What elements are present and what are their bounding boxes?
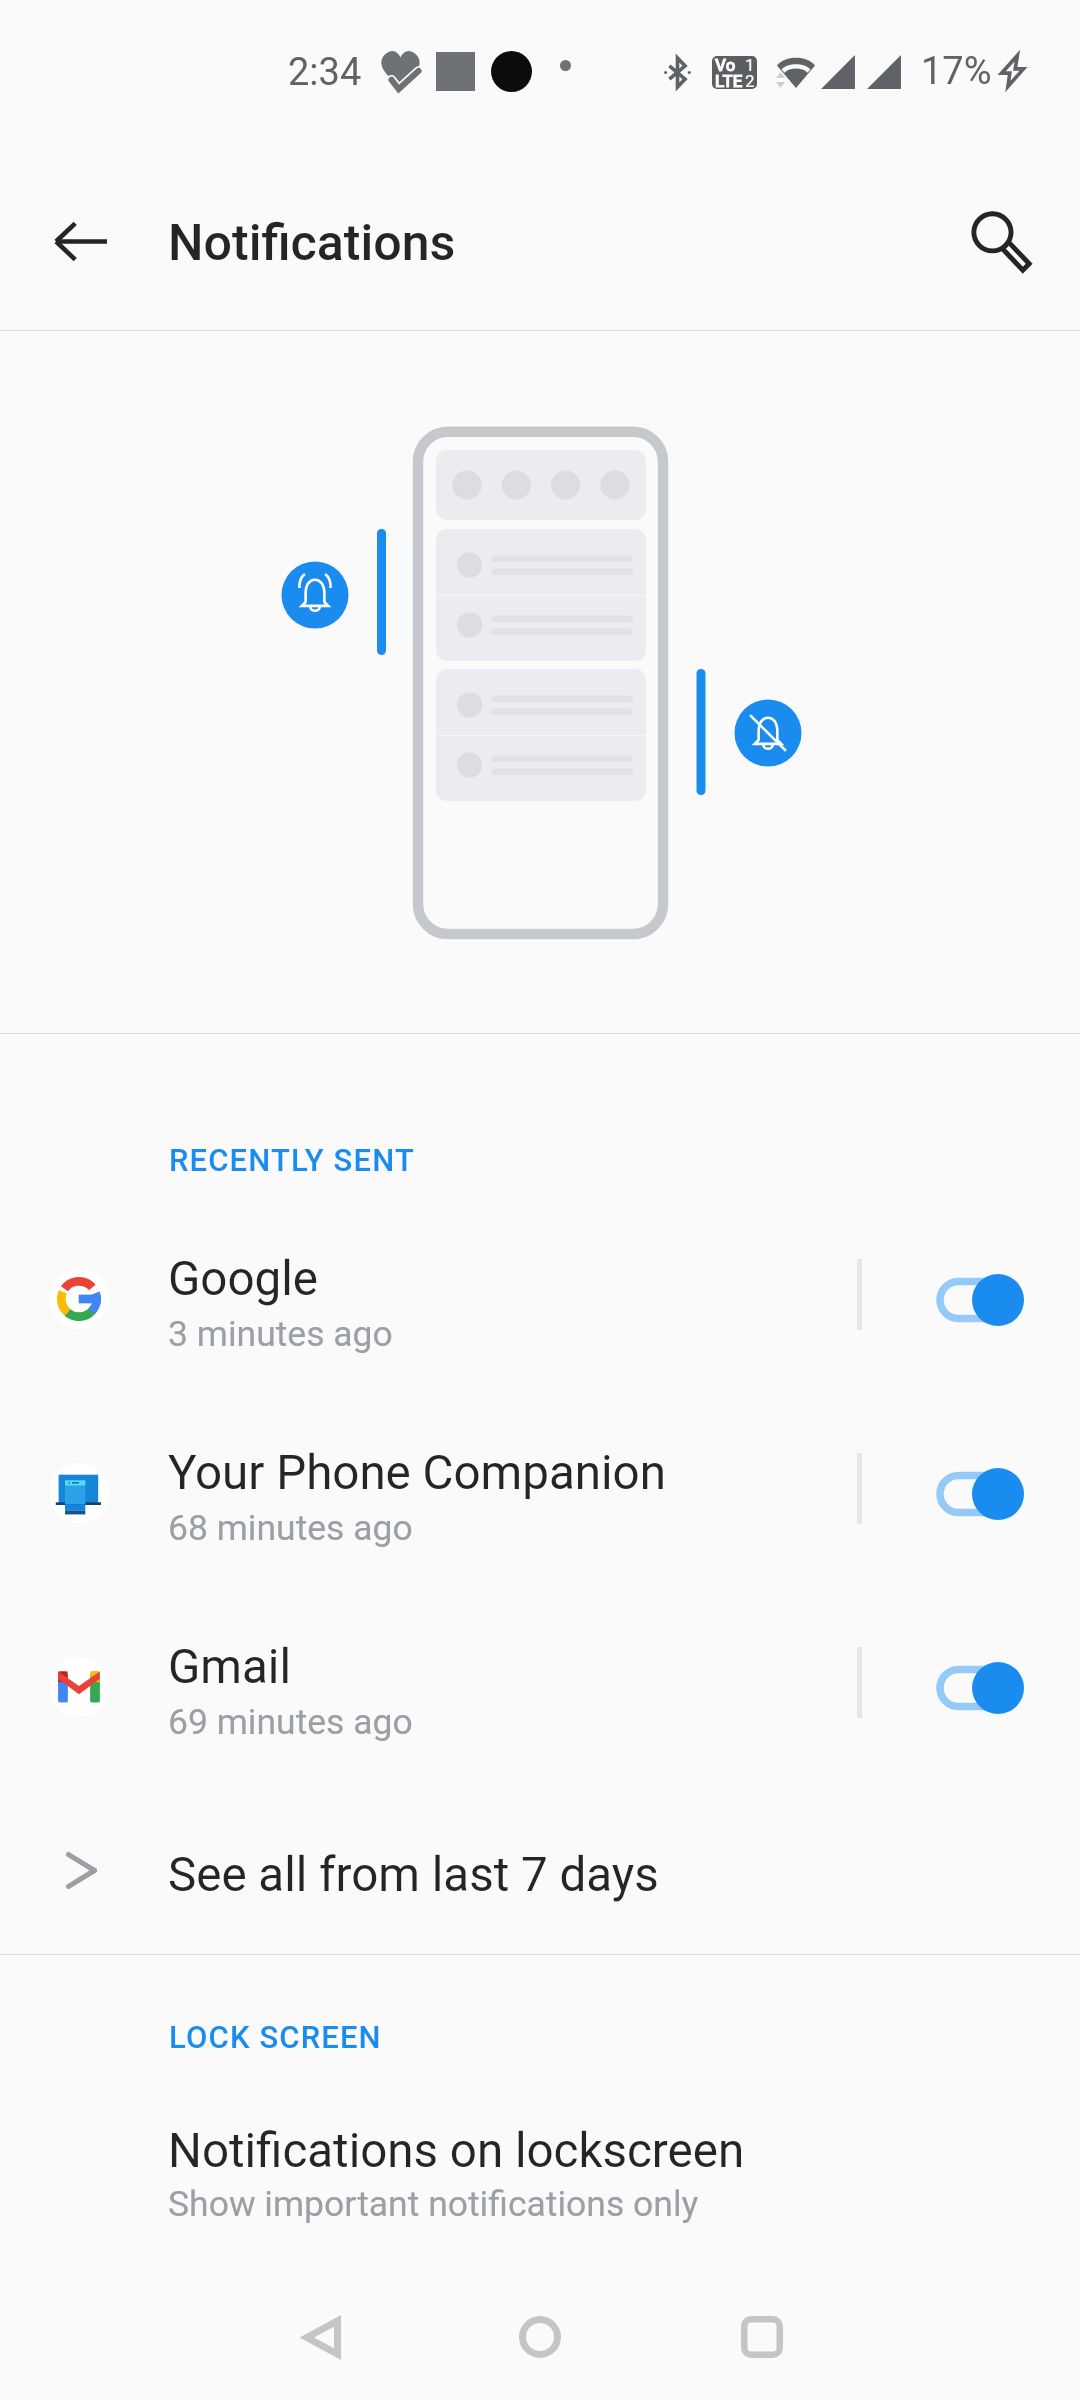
- staticText: 3 minutes ago: [168, 1313, 393, 1355]
- button[interactable]: Your Phone Companion: [0, 1396, 1080, 1590]
- staticText: Notifications on lockscreen: [168, 2123, 745, 2179]
- staticText: Vo: [715, 56, 736, 75]
- button[interactable]: Search: [946, 187, 1054, 295]
- staticText: 68 minutes ago: [168, 1507, 413, 1549]
- staticText: Show important notifications only: [168, 2183, 699, 2225]
- button[interactable]: Toggle Your Phone Companion notification…: [935, 1439, 1045, 1549]
- button[interactable]: Back: [26, 187, 134, 295]
- button[interactable]: Gmail: [0, 1590, 1080, 1784]
- button[interactable]: Toggle Google notifications: [935, 1245, 1045, 1355]
- staticText: Gmail: [168, 1639, 291, 1695]
- staticText: Notifications: [168, 214, 456, 273]
- button[interactable]: See all from last 7 days: [0, 1796, 1080, 1960]
- staticText: 1: [745, 56, 755, 75]
- button[interactable]: Notifications on lockscreen: [0, 2096, 1080, 2256]
- staticText: 2:34: [288, 50, 362, 95]
- button[interactable]: Recents: [702, 2277, 822, 2397]
- button[interactable]: Back: [260, 2277, 380, 2397]
- staticText: LOCK SCREEN: [169, 2019, 382, 2055]
- button[interactable]: Home: [480, 2277, 600, 2397]
- staticText: LTE: [715, 71, 743, 89]
- staticText: 17%: [921, 49, 992, 94]
- staticText: Google: [168, 1251, 318, 1307]
- staticText: RECENTLY SENT: [169, 1142, 415, 1178]
- staticText: 69 minutes ago: [168, 1701, 413, 1743]
- staticText: See all from last 7 days: [168, 1847, 659, 1903]
- button[interactable]: Google: [0, 1202, 1080, 1396]
- staticText: 2: [745, 71, 755, 89]
- button[interactable]: Toggle Gmail notifications: [935, 1633, 1045, 1743]
- staticText: Your Phone Companion: [168, 1445, 666, 1501]
